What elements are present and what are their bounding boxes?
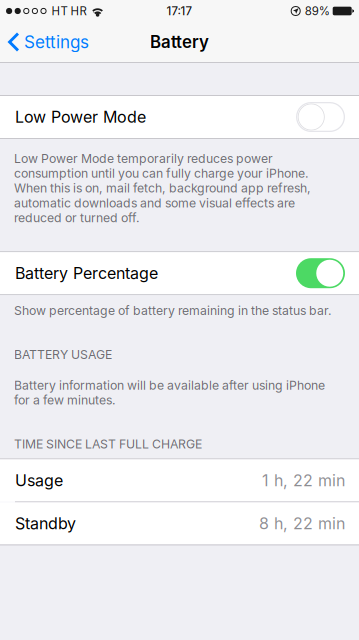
staticText: Show percentage of battery remaining in …: [14, 303, 332, 318]
button[interactable]: Settings: [0, 22, 99, 62]
staticText: 17:17: [166, 4, 192, 18]
button[interactable]: Standby: [0, 502, 359, 544]
staticText: BATTERY USAGE: [14, 347, 112, 362]
staticText: TIME SINCE LAST FULL CHARGE: [14, 437, 202, 451]
staticText: Usage: [15, 471, 63, 490]
button[interactable]: Usage: [0, 459, 359, 501]
staticText: 1 h, 22 min: [262, 471, 345, 490]
staticText: 89%: [305, 4, 330, 18]
staticText: Settings: [24, 32, 89, 52]
staticText: Battery Percentage: [15, 263, 158, 283]
staticText: Battery information will be available af…: [14, 378, 325, 408]
staticText: Standby: [15, 514, 76, 533]
staticText: 8 h, 22 min: [259, 514, 345, 533]
button[interactable]: Low Power Mode: [0, 96, 359, 138]
staticText: Low Power Mode temporarily reduces power…: [14, 151, 311, 225]
button[interactable]: Battery Percentage: [0, 252, 359, 294]
staticText: HT HR: [52, 4, 87, 18]
staticText: Low Power Mode: [15, 107, 146, 127]
staticText: Battery: [150, 32, 209, 52]
